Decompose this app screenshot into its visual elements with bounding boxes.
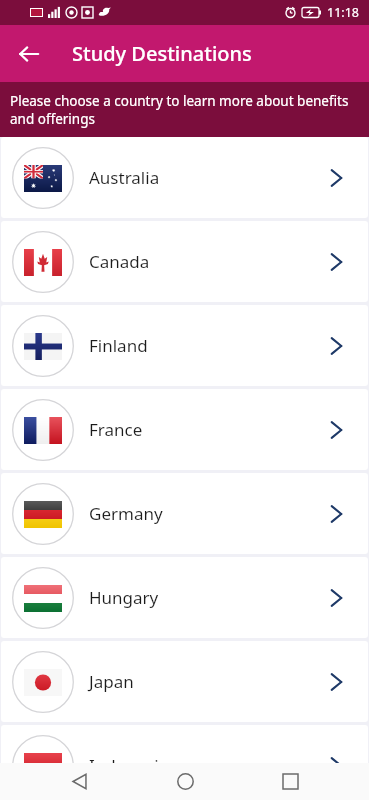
staticText: Please choose a country to learn more ab… [10,92,355,128]
staticText: France [89,418,143,441]
button[interactable]: Home [159,763,211,800]
button[interactable]: Back [53,763,105,800]
button[interactable]: Japan [1,641,368,722]
button[interactable]: Canada [1,221,368,302]
button[interactable]: Australia [1,137,368,218]
staticText: Canada [89,250,150,273]
button[interactable]: Indonesia [1,725,368,763]
staticText: Study Destinations [72,40,252,67]
staticText: Australia [89,166,160,189]
staticText: Hungary [89,586,159,609]
button[interactable]: Germany [1,473,368,554]
button[interactable]: France [1,389,368,470]
staticText: Germany [89,502,163,525]
button[interactable]: Recent apps [264,763,316,800]
button[interactable]: Finland [1,305,368,386]
staticText: Finland [89,334,148,357]
button[interactable]: Back [8,33,50,75]
staticText: Indonesia [89,754,169,763]
staticText: Japan [89,670,134,693]
staticText: 11:18 [327,4,359,21]
button[interactable]: Hungary [1,557,368,638]
